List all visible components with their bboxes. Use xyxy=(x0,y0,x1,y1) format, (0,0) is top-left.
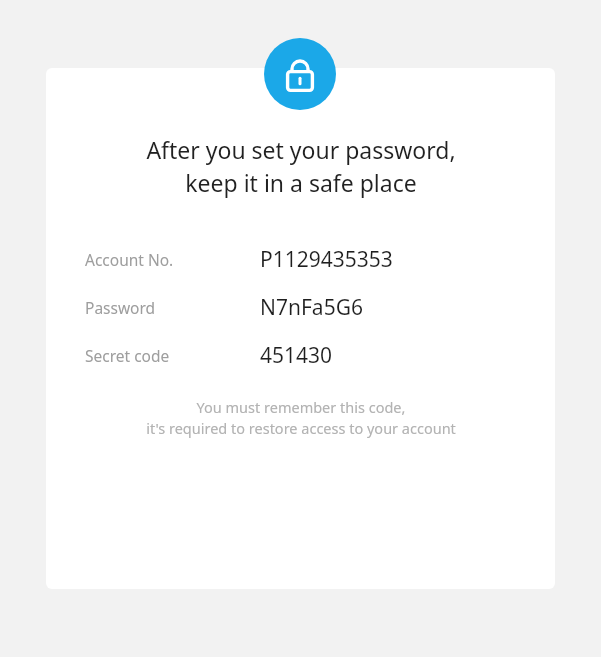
staticText: Account No. xyxy=(85,249,174,270)
staticText: 451430 xyxy=(260,341,333,370)
button[interactable]: Secure password xyxy=(264,38,336,110)
staticText: Password xyxy=(85,297,156,318)
staticText: Secret code xyxy=(85,345,170,366)
button[interactable]: Password xyxy=(46,293,555,322)
staticText: N7nFa5G6 xyxy=(260,293,363,322)
staticText: After you set your password, keep it in … xyxy=(146,134,456,199)
staticText: P1129435353 xyxy=(260,245,393,274)
button[interactable]: Account No. xyxy=(46,245,555,274)
staticText: You must remember this code, it's requir… xyxy=(146,397,456,439)
button[interactable]: Secret code xyxy=(46,341,555,370)
